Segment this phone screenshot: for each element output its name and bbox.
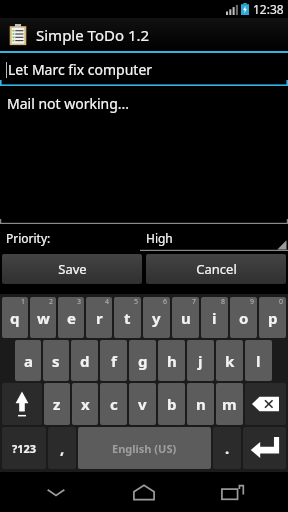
- staticText: 6: [163, 297, 168, 307]
- button[interactable]: h: [158, 340, 185, 381]
- button[interactable]: r: [86, 297, 112, 338]
- button[interactable]: Let Marc fix computer: [0, 53, 288, 86]
- button[interactable]: Hide keyboard: [24, 472, 88, 512]
- staticText: d: [80, 351, 90, 371]
- staticText: s: [52, 351, 60, 371]
- button[interactable]: m: [216, 383, 243, 425]
- button[interactable]: d: [71, 340, 98, 381]
- button[interactable]: q: [2, 297, 28, 338]
- staticText: Let Marc fix computer: [8, 60, 153, 79]
- staticText: v: [138, 394, 147, 414]
- button[interactable]: Save: [2, 254, 142, 284]
- staticText: u: [181, 308, 191, 328]
- staticText: 2: [49, 297, 54, 307]
- staticText: 5: [134, 297, 139, 307]
- button[interactable]: o: [230, 297, 257, 338]
- staticText: q: [10, 308, 20, 328]
- staticText: n: [196, 394, 206, 414]
- staticText: e: [67, 308, 76, 328]
- button[interactable]: b: [158, 383, 185, 425]
- button[interactable]: t: [114, 297, 141, 338]
- staticText: b: [167, 394, 177, 414]
- staticText: y: [152, 308, 161, 328]
- button[interactable]: Home: [112, 472, 176, 512]
- staticText: Simple ToDo 1.2: [36, 25, 150, 45]
- button[interactable]: Shift: [2, 383, 42, 425]
- staticText: c: [110, 394, 118, 414]
- staticText: w: [37, 308, 50, 328]
- button[interactable]: p: [259, 297, 286, 338]
- staticText: l: [256, 351, 261, 371]
- staticText: 12:38: [253, 1, 284, 17]
- button[interactable]: Mail not working...: [0, 86, 288, 224]
- button[interactable]: ,: [48, 427, 76, 469]
- staticText: p: [268, 308, 278, 328]
- staticText: j: [198, 351, 203, 371]
- button[interactable]: w: [30, 297, 56, 338]
- button[interactable]: x: [72, 383, 98, 425]
- button[interactable]: l: [245, 340, 272, 381]
- staticText: English (US): [112, 441, 177, 456]
- staticText: x: [81, 394, 90, 414]
- staticText: 0: [279, 297, 284, 307]
- staticText: r: [96, 308, 103, 328]
- staticText: 3: [77, 297, 82, 307]
- button[interactable]: Enter: [243, 427, 286, 469]
- staticText: Cancel: [196, 260, 237, 278]
- button[interactable]: j: [187, 340, 214, 381]
- button[interactable]: g: [129, 340, 156, 381]
- button[interactable]: y: [143, 297, 170, 338]
- staticText: z: [53, 394, 61, 414]
- staticText: 9: [250, 297, 255, 307]
- button[interactable]: a: [15, 340, 41, 381]
- staticText: ?123: [12, 441, 37, 456]
- button[interactable]: English (US): [78, 427, 211, 469]
- staticText: a: [24, 351, 33, 371]
- staticText: k: [225, 351, 235, 371]
- staticText: Save: [58, 260, 87, 278]
- staticText: t: [124, 308, 131, 328]
- staticText: 4: [105, 297, 110, 307]
- staticText: f: [111, 351, 117, 371]
- staticText: h: [167, 351, 177, 371]
- button[interactable]: f: [100, 340, 127, 381]
- button[interactable]: e: [58, 297, 84, 338]
- button[interactable]: Cancel: [146, 254, 286, 284]
- button[interactable]: Backspace: [245, 383, 286, 425]
- button[interactable]: z: [44, 383, 70, 425]
- staticText: i: [212, 308, 217, 328]
- button[interactable]: High: [140, 224, 288, 251]
- staticText: g: [138, 351, 148, 371]
- button[interactable]: s: [43, 340, 69, 381]
- button[interactable]: v: [129, 383, 156, 425]
- button[interactable]: i: [201, 297, 228, 338]
- staticText: 8: [221, 297, 226, 307]
- staticText: m: [222, 394, 237, 414]
- button[interactable]: u: [172, 297, 199, 338]
- staticText: .: [225, 438, 230, 458]
- staticText: 1: [21, 297, 26, 307]
- staticText: o: [239, 308, 249, 328]
- staticText: Priority:: [6, 230, 51, 246]
- button[interactable]: c: [100, 383, 127, 425]
- button[interactable]: k: [216, 340, 243, 381]
- button[interactable]: n: [187, 383, 214, 425]
- staticText: ,: [60, 438, 65, 458]
- staticText: High: [146, 230, 173, 246]
- staticText: Mail not working...: [7, 94, 130, 113]
- button[interactable]: ?123: [2, 427, 46, 469]
- staticText: 7: [192, 297, 197, 307]
- button[interactable]: Recent apps: [200, 472, 264, 512]
- button[interactable]: .: [213, 427, 241, 469]
